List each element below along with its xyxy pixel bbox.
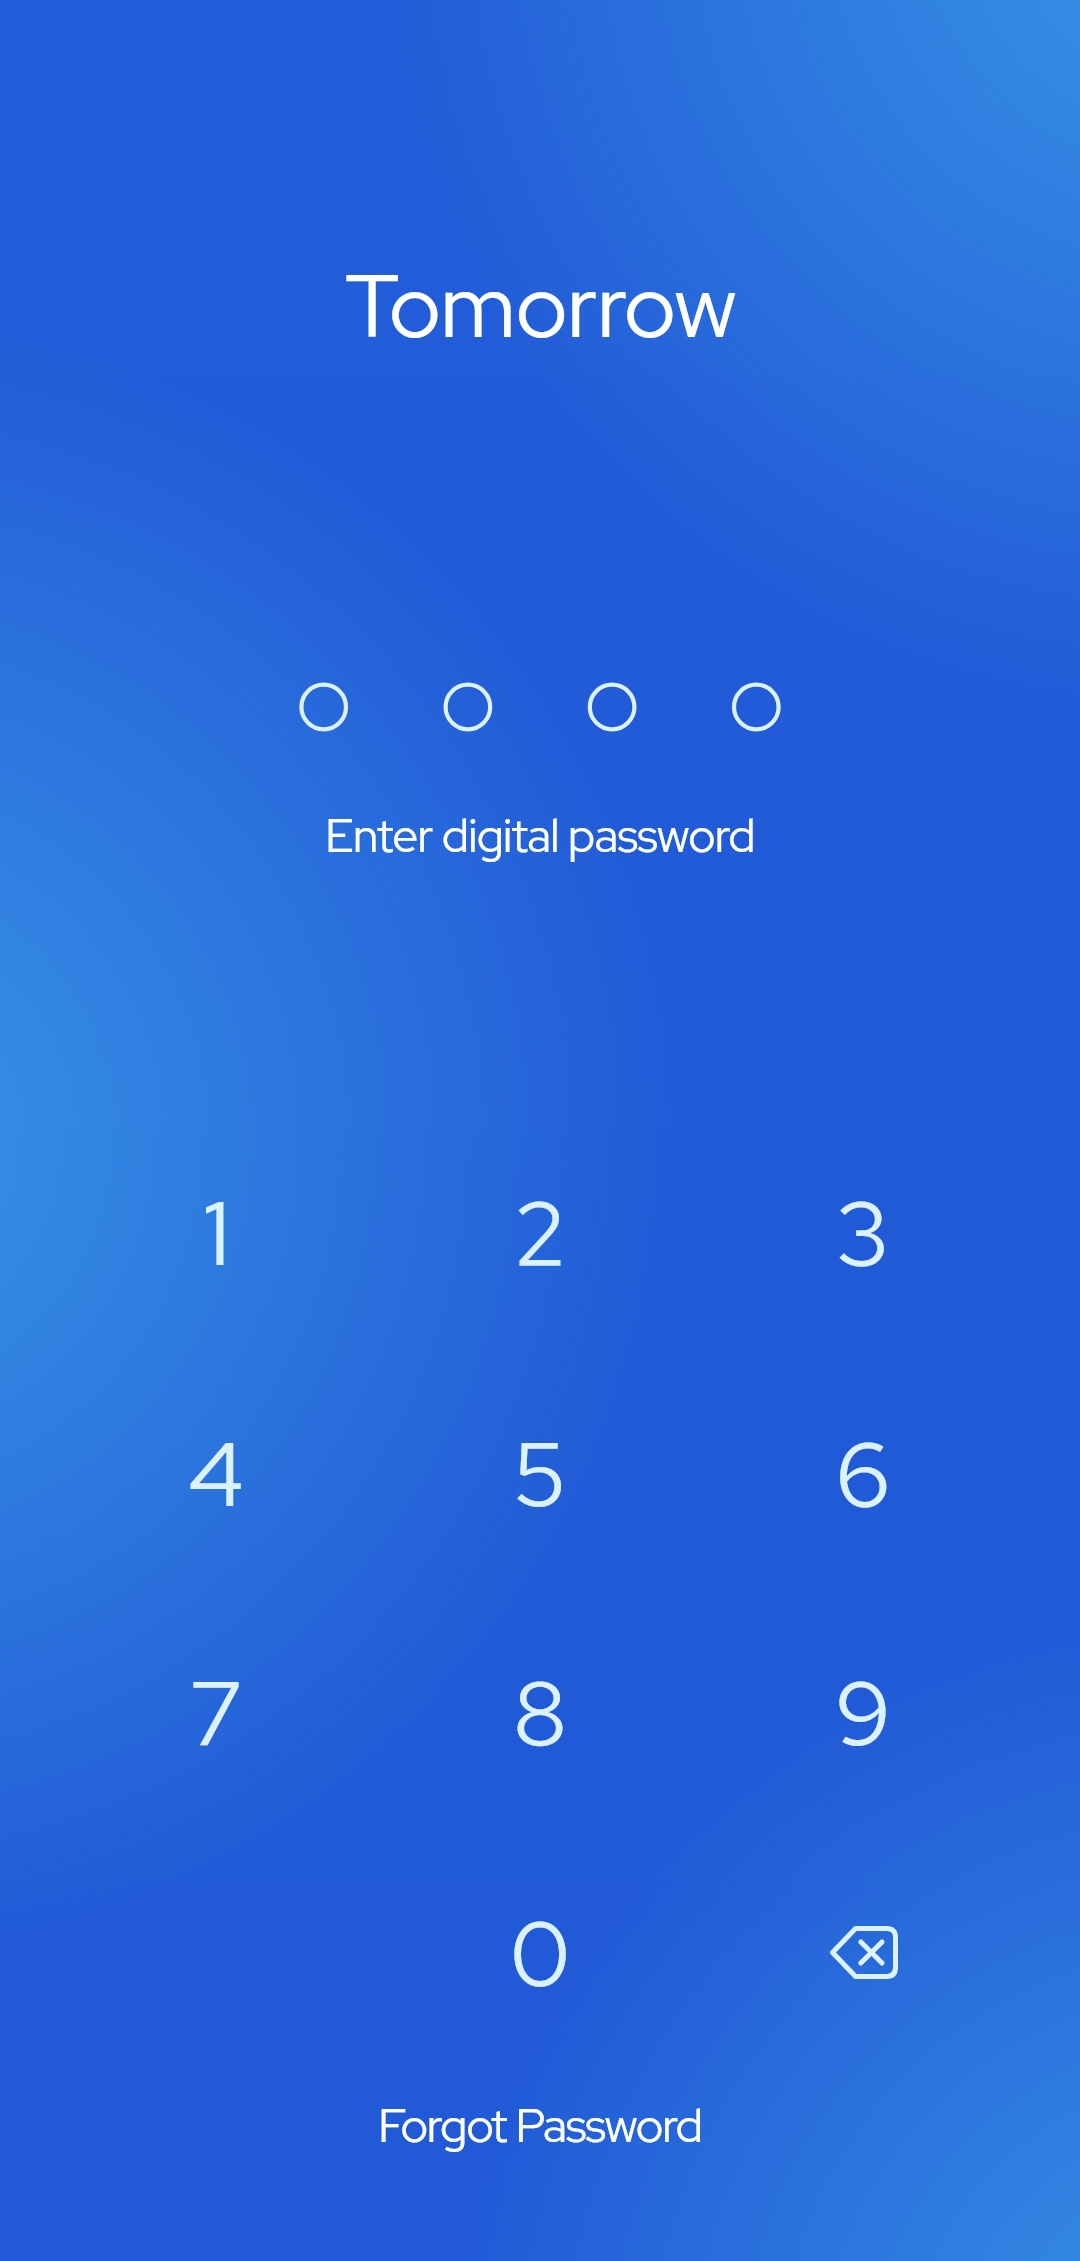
staticText: 4: [188, 1414, 244, 1533]
staticText: 3: [836, 1173, 890, 1292]
button[interactable]: 0: [390, 1847, 690, 2057]
staticText: 9: [835, 1653, 891, 1772]
staticText: 1: [203, 1173, 230, 1292]
button[interactable]: 9: [713, 1607, 1013, 1817]
button[interactable]: 2: [390, 1127, 690, 1337]
button[interactable]: 6: [713, 1368, 1013, 1578]
staticText: 6: [836, 1414, 890, 1533]
staticText: Tomorrow: [345, 247, 736, 363]
staticText: 5: [513, 1414, 567, 1533]
staticText: 7: [189, 1653, 243, 1772]
button[interactable]: 7: [66, 1607, 366, 1817]
button[interactable]: 5: [390, 1368, 690, 1578]
staticText: Forgot Password: [378, 2095, 702, 2157]
staticText: 0: [510, 1893, 570, 2012]
button[interactable]: 1: [66, 1127, 366, 1337]
button[interactable]: 3: [713, 1127, 1013, 1337]
staticText: Enter digital password: [325, 805, 755, 866]
staticText: 2: [513, 1173, 567, 1292]
staticText: 8: [513, 1653, 567, 1772]
button[interactable]: Backspace: [713, 1847, 1013, 2057]
button[interactable]: 4: [66, 1368, 366, 1578]
button[interactable]: 8: [390, 1607, 690, 1817]
button[interactable]: Forgot Password: [330, 2095, 750, 2165]
